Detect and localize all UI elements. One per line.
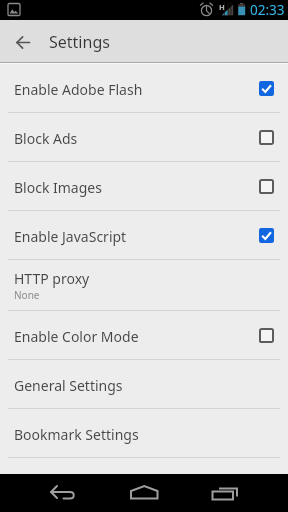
- staticText: Block Ads: [14, 129, 259, 148]
- staticText: Enable Adobe Flash: [14, 80, 259, 99]
- button[interactable]: General Settings: [0, 360, 288, 408]
- staticText: Enable Color Mode: [14, 327, 259, 346]
- button[interactable]: Bookmark Settings: [0, 409, 288, 457]
- button[interactable]: Block Ads: [0, 113, 288, 161]
- staticText: None: [14, 288, 40, 302]
- staticText: HTTP proxy: [14, 269, 90, 288]
- button[interactable]: Enable Color Mode: [0, 311, 288, 359]
- button[interactable]: Enable JavaScript: [0, 211, 288, 259]
- staticText: General Settings: [14, 376, 123, 395]
- button[interactable]: Back: [0, 20, 44, 63]
- staticText: Enable JavaScript: [14, 227, 259, 246]
- staticText: 02:33: [250, 1, 285, 19]
- button[interactable]: Recent apps: [192, 474, 288, 512]
- button[interactable]: HTTP proxy: [0, 260, 288, 310]
- button[interactable]: Block Images: [0, 162, 288, 210]
- staticText: Settings: [49, 31, 110, 53]
- button[interactable]: Back: [0, 474, 96, 512]
- staticText: Block Images: [14, 178, 259, 197]
- button[interactable]: Enable Adobe Flash: [0, 64, 288, 112]
- staticText: Bookmark Settings: [14, 425, 139, 444]
- button[interactable]: Home: [96, 474, 192, 512]
- staticText: H: [219, 2, 225, 12]
